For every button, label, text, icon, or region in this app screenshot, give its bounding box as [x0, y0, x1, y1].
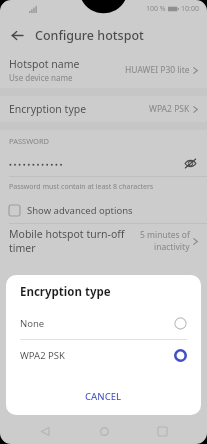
staticText: Configure hotspot: [35, 27, 144, 44]
staticText: Encryption type: [20, 284, 111, 300]
button[interactable]: Home: [93, 420, 115, 442]
staticText: 10:00: [181, 4, 199, 14]
staticText: WPA2 PSK: [20, 349, 174, 362]
staticText: CANCEL: [85, 390, 122, 403]
staticText: WPA2 PSK: [149, 103, 190, 115]
button[interactable]: WPA2 PSK: [6, 340, 201, 371]
staticText: Use device name: [9, 72, 73, 83]
staticText: None: [20, 317, 174, 330]
staticText: Show advanced options: [27, 204, 133, 217]
staticText: Hotspot name: [9, 57, 80, 71]
button[interactable]: Show password: [0, 152, 207, 174]
button[interactable]: Hotspot name: [0, 52, 207, 88]
staticText: 5 minutes of: [140, 229, 190, 241]
button[interactable]: Mobile hotspot turn-off timer: [0, 224, 207, 258]
staticText: inactivity: [154, 241, 190, 253]
button[interactable]: Encryption type: [0, 96, 207, 122]
staticText: PASSWORD: [9, 136, 50, 146]
button[interactable]: Back: [34, 420, 56, 442]
button[interactable]: CANCEL: [6, 383, 201, 409]
button[interactable]: Back: [5, 23, 29, 47]
staticText: Password must contain at least 8 charact…: [9, 182, 154, 192]
staticText: 100 %: [146, 4, 166, 14]
staticText: HUAWEI P30 lite: [125, 64, 190, 76]
button[interactable]: Show password: [182, 155, 198, 171]
button[interactable]: Recent apps: [151, 420, 173, 442]
button[interactable]: Show advanced options: [0, 197, 207, 223]
staticText: Mobile hotspot turn-off timer: [9, 227, 140, 255]
button[interactable]: None: [6, 308, 201, 339]
staticText: Encryption type: [9, 102, 149, 116]
